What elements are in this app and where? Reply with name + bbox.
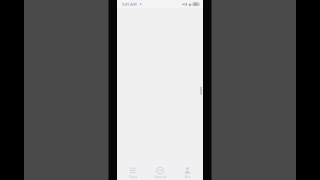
button[interactable]: Feed	[119, 161, 146, 180]
button[interactable]: Me	[174, 161, 201, 180]
staticText: Feed	[129, 174, 137, 179]
staticText: Me	[184, 174, 190, 179]
staticText: Search	[154, 174, 166, 179]
button[interactable]: Search	[146, 161, 174, 180]
staticText: 9:41 AM	[122, 2, 137, 7]
